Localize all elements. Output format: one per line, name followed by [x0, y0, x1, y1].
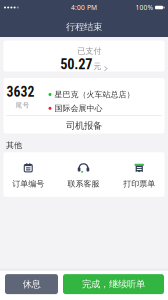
- staticText: 尾号: [15, 101, 29, 109]
- staticText: 完成，继续听单: [82, 278, 145, 290]
- staticText: 已支付: [77, 46, 101, 56]
- button[interactable]: 联系客服: [53, 152, 114, 197]
- staticText: 100%: [135, 3, 153, 12]
- staticText: 星巴克（火车站总店）: [54, 90, 134, 99]
- button[interactable]: 订单编号: [3, 152, 53, 197]
- button[interactable]: 休息: [5, 274, 58, 294]
- button[interactable]: 司机报备: [3, 116, 164, 133]
- staticText: 打印票单: [123, 179, 155, 189]
- staticText: 元: [93, 61, 101, 71]
- button[interactable]: 完成，继续听单: [63, 274, 164, 294]
- staticText: 50.27: [60, 56, 92, 73]
- staticText: 国际会展中心: [54, 103, 102, 113]
- staticText: 其他: [6, 140, 22, 150]
- button[interactable]: 打印票单: [114, 152, 164, 197]
- staticText: 联系客服: [67, 179, 99, 189]
- staticText: 3632: [6, 84, 34, 100]
- staticText: 4:00 PM: [71, 3, 97, 12]
- staticText: 休息: [22, 278, 40, 290]
- button[interactable]: 已支付: [0, 40, 168, 71]
- staticText: 订单编号: [12, 179, 44, 189]
- staticText: 司机报备: [66, 120, 102, 131]
- staticText: 行程结束: [66, 21, 102, 33]
